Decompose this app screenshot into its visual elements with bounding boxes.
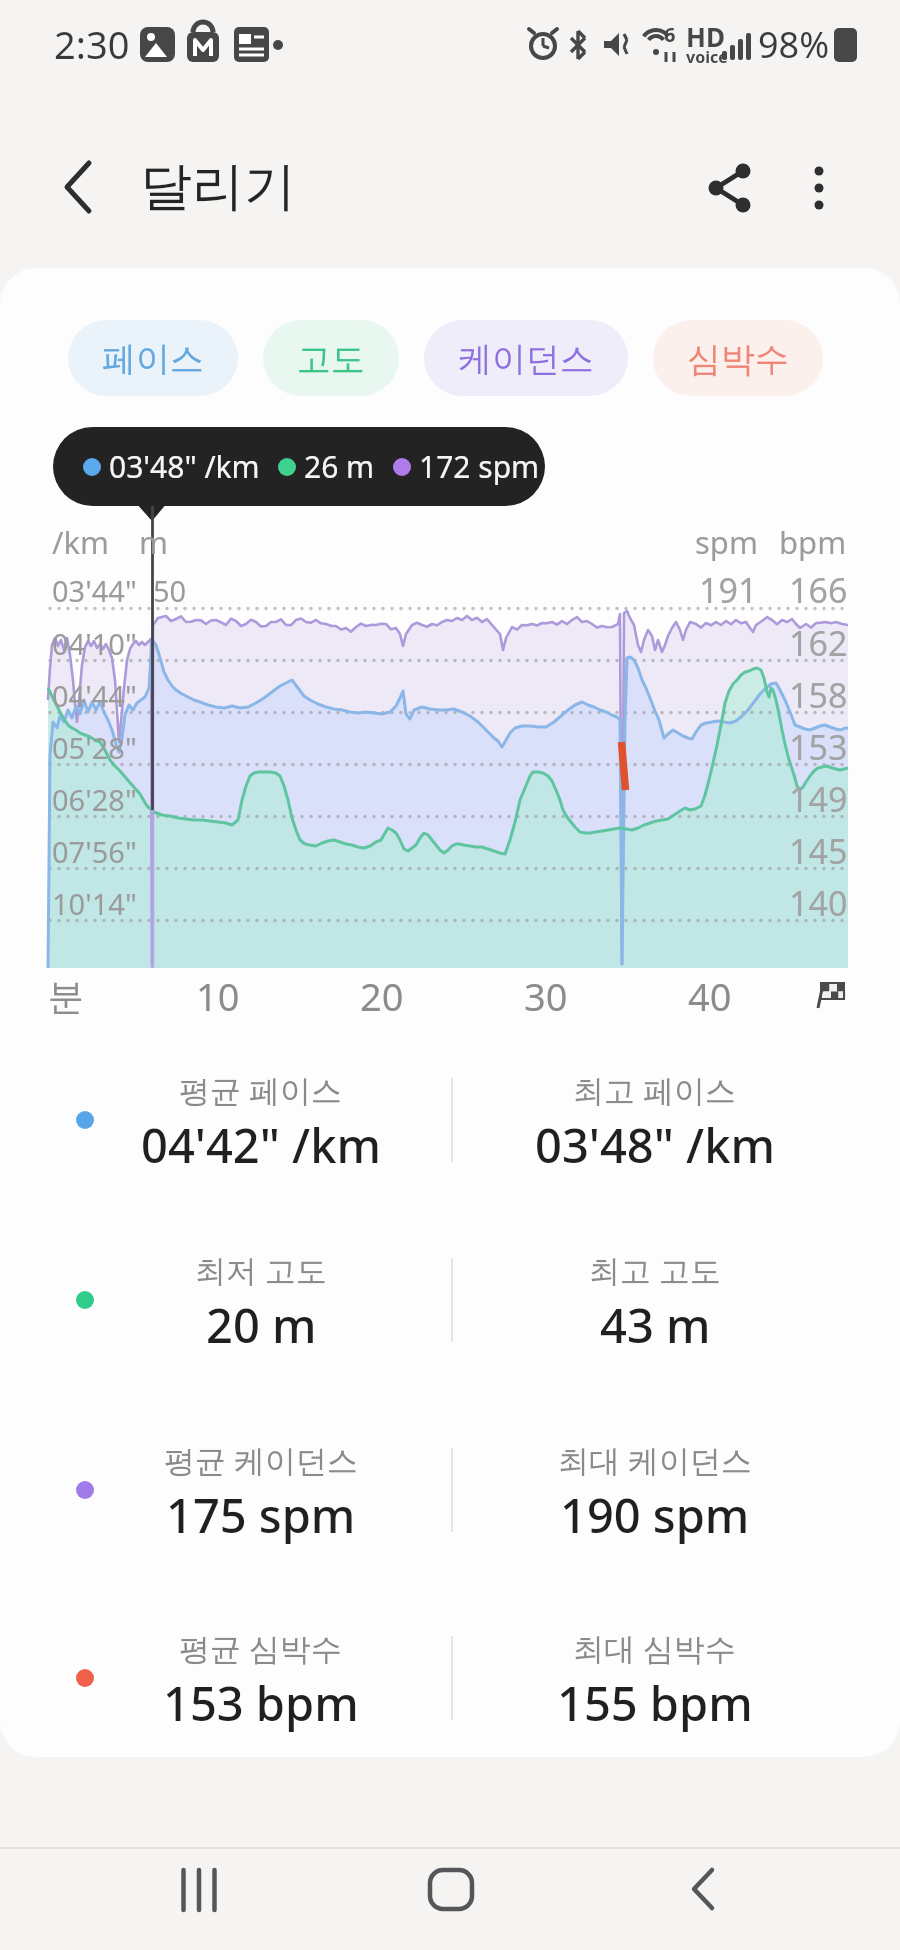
button[interactable] xyxy=(60,1415,452,1565)
staticText: 166 xyxy=(789,567,848,613)
button[interactable] xyxy=(460,1603,850,1753)
staticText: 평균 심박수 xyxy=(179,1627,343,1669)
button[interactable] xyxy=(690,160,750,216)
button[interactable] xyxy=(460,1045,850,1195)
button[interactable] xyxy=(40,160,110,216)
staticText: 149 xyxy=(789,776,848,822)
staticText: 04'42" /km xyxy=(141,1113,381,1177)
staticText: 10 xyxy=(196,970,240,1022)
staticText: 175 spm xyxy=(166,1483,356,1547)
staticText: 고도 xyxy=(297,338,365,378)
staticText: 145 xyxy=(789,828,848,874)
staticText: 172 spm xyxy=(419,446,540,487)
staticText: 10'14" xyxy=(52,884,137,923)
button[interactable]: 케이던스 xyxy=(424,320,628,396)
staticText: 07'56" xyxy=(52,832,137,871)
staticText: HD xyxy=(686,19,725,54)
staticText: 페이스 xyxy=(102,338,204,378)
staticText: 2:30 xyxy=(54,18,130,70)
staticText: 05'28" xyxy=(52,728,137,767)
staticText: 04'44" xyxy=(52,676,137,715)
staticText: 03'48" /km xyxy=(109,446,260,487)
staticText: 최고 페이스 xyxy=(573,1069,737,1111)
staticText: 심박수 xyxy=(687,338,789,378)
staticText: 20 xyxy=(360,970,404,1022)
staticText: 최대 심박수 xyxy=(573,1627,737,1669)
staticText: /km xyxy=(52,521,110,563)
button[interactable]: 03'48" /km xyxy=(53,427,545,506)
button[interactable] xyxy=(60,1603,452,1753)
staticText: 158 xyxy=(789,672,848,718)
staticText: 26 m xyxy=(304,446,375,487)
staticText: 162 xyxy=(789,620,848,666)
button[interactable] xyxy=(390,1850,510,1945)
staticText: 최저 고도 xyxy=(195,1249,328,1291)
button[interactable]: 페이스 xyxy=(68,320,238,396)
staticText: 최고 고도 xyxy=(589,1249,722,1291)
staticText: 50 xyxy=(153,571,187,610)
staticText: 달리기 xyxy=(140,154,296,220)
staticText: 140 xyxy=(789,880,848,926)
staticText: 98% xyxy=(758,20,830,69)
staticText: 분 xyxy=(48,974,84,1019)
staticText: 케이던스 xyxy=(458,338,594,378)
button[interactable]: 고도 xyxy=(263,320,399,396)
staticText: m xyxy=(139,521,168,563)
staticText: 43 m xyxy=(600,1293,711,1357)
staticText: 평균 페이스 xyxy=(179,1069,343,1111)
staticText: 평균 케이던스 xyxy=(164,1439,359,1481)
button[interactable] xyxy=(60,1225,452,1375)
staticText: 03'44" xyxy=(52,571,137,610)
button[interactable]: 심박수 xyxy=(653,320,823,396)
staticText: bpm xyxy=(779,521,847,563)
staticText: 최대 케이던스 xyxy=(558,1439,753,1481)
staticText: 30 xyxy=(524,970,568,1022)
staticText: 191 xyxy=(699,567,758,613)
staticText: 155 bpm xyxy=(557,1671,753,1735)
staticText: 6 xyxy=(664,21,676,48)
button[interactable] xyxy=(650,1850,770,1945)
staticText: voice xyxy=(686,46,728,68)
staticText: 06'28" xyxy=(52,780,137,819)
staticText: 40 xyxy=(688,970,732,1022)
button[interactable] xyxy=(460,1415,850,1565)
staticText: spm xyxy=(695,521,758,563)
button[interactable] xyxy=(795,160,845,216)
staticText: 153 bpm xyxy=(163,1671,359,1735)
staticText: 20 m xyxy=(206,1293,317,1357)
staticText: 190 spm xyxy=(560,1483,750,1547)
button[interactable] xyxy=(140,1850,260,1945)
button[interactable] xyxy=(60,1045,452,1195)
staticText: 04'10" xyxy=(52,624,137,663)
staticText: 03'48" /km xyxy=(535,1113,775,1177)
button[interactable] xyxy=(460,1225,850,1375)
staticText: 153 xyxy=(789,724,848,770)
